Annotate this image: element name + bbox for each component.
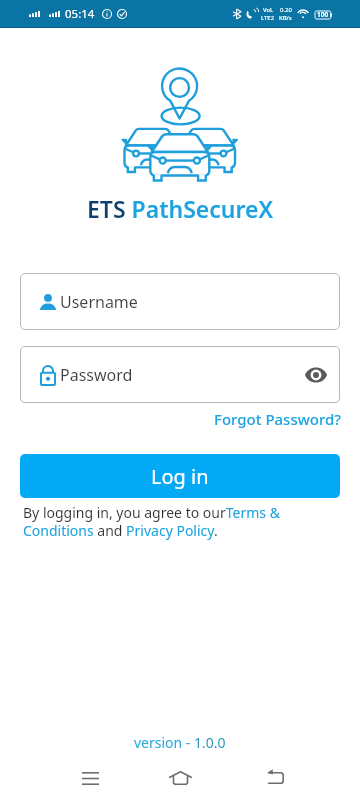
button[interactable]: Log in xyxy=(20,454,340,498)
button[interactable]: Forgot Password? xyxy=(214,409,342,429)
staticText: Username xyxy=(60,291,138,313)
staticText: KB/s xyxy=(279,14,292,22)
button[interactable]: Home xyxy=(158,761,202,795)
button[interactable]: Show password xyxy=(299,358,333,392)
staticText: Password xyxy=(60,364,133,386)
staticText: Log in xyxy=(151,463,209,490)
staticText: 05:14 xyxy=(65,6,95,22)
staticText: ETS PathSecureX xyxy=(87,193,274,224)
staticText: VoL xyxy=(263,6,274,14)
button[interactable]: Back xyxy=(253,761,297,795)
staticText: 0.20 xyxy=(280,6,292,14)
staticText: By logging in, you agree to ourTerms & C… xyxy=(23,503,325,540)
staticText: LTE2 xyxy=(261,14,275,22)
button[interactable]: Username xyxy=(20,273,340,330)
button[interactable]: Password xyxy=(20,346,340,403)
button[interactable]: Recents xyxy=(68,761,112,795)
staticText: version - 1.0.0 xyxy=(134,733,226,752)
staticText: 100 xyxy=(317,10,329,19)
